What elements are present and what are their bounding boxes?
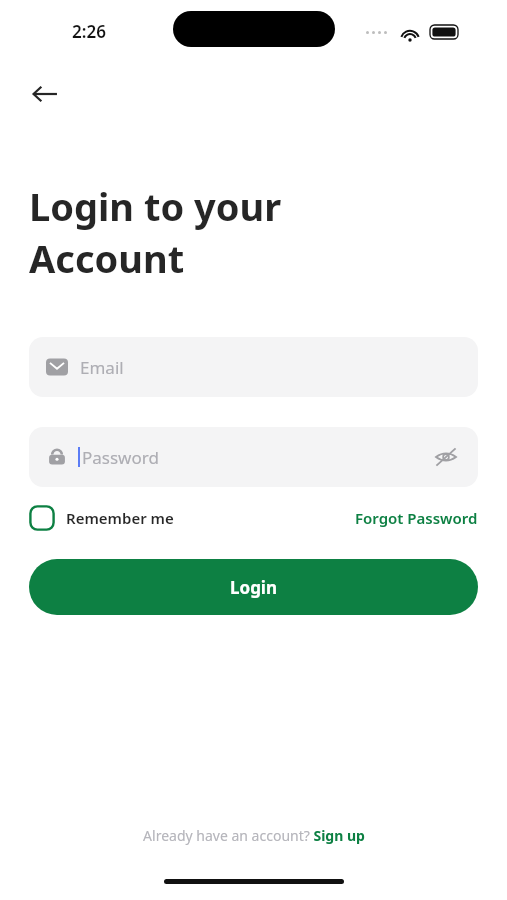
staticText: 2:26 bbox=[72, 20, 106, 43]
button[interactable]: Email bbox=[29, 337, 478, 397]
staticText: Account bbox=[29, 232, 185, 284]
staticText: Remember me bbox=[66, 508, 174, 528]
button[interactable]: Login bbox=[29, 559, 478, 615]
button[interactable]: Forgot Password bbox=[355, 508, 478, 528]
button[interactable]: Already have an account? Sign up bbox=[135, 822, 373, 849]
staticText: Login to your bbox=[29, 180, 282, 232]
staticText: Email bbox=[80, 356, 124, 379]
button[interactable]: Back bbox=[22, 71, 68, 117]
button[interactable]: Show password bbox=[426, 437, 466, 477]
button[interactable]: Remember me bbox=[29, 505, 174, 531]
staticText: Login bbox=[230, 576, 278, 599]
button[interactable]: Password bbox=[29, 427, 478, 487]
staticText: Already have an account? Sign up bbox=[143, 826, 365, 845]
staticText: Forgot Password bbox=[355, 508, 478, 528]
staticText: Password bbox=[82, 446, 159, 469]
